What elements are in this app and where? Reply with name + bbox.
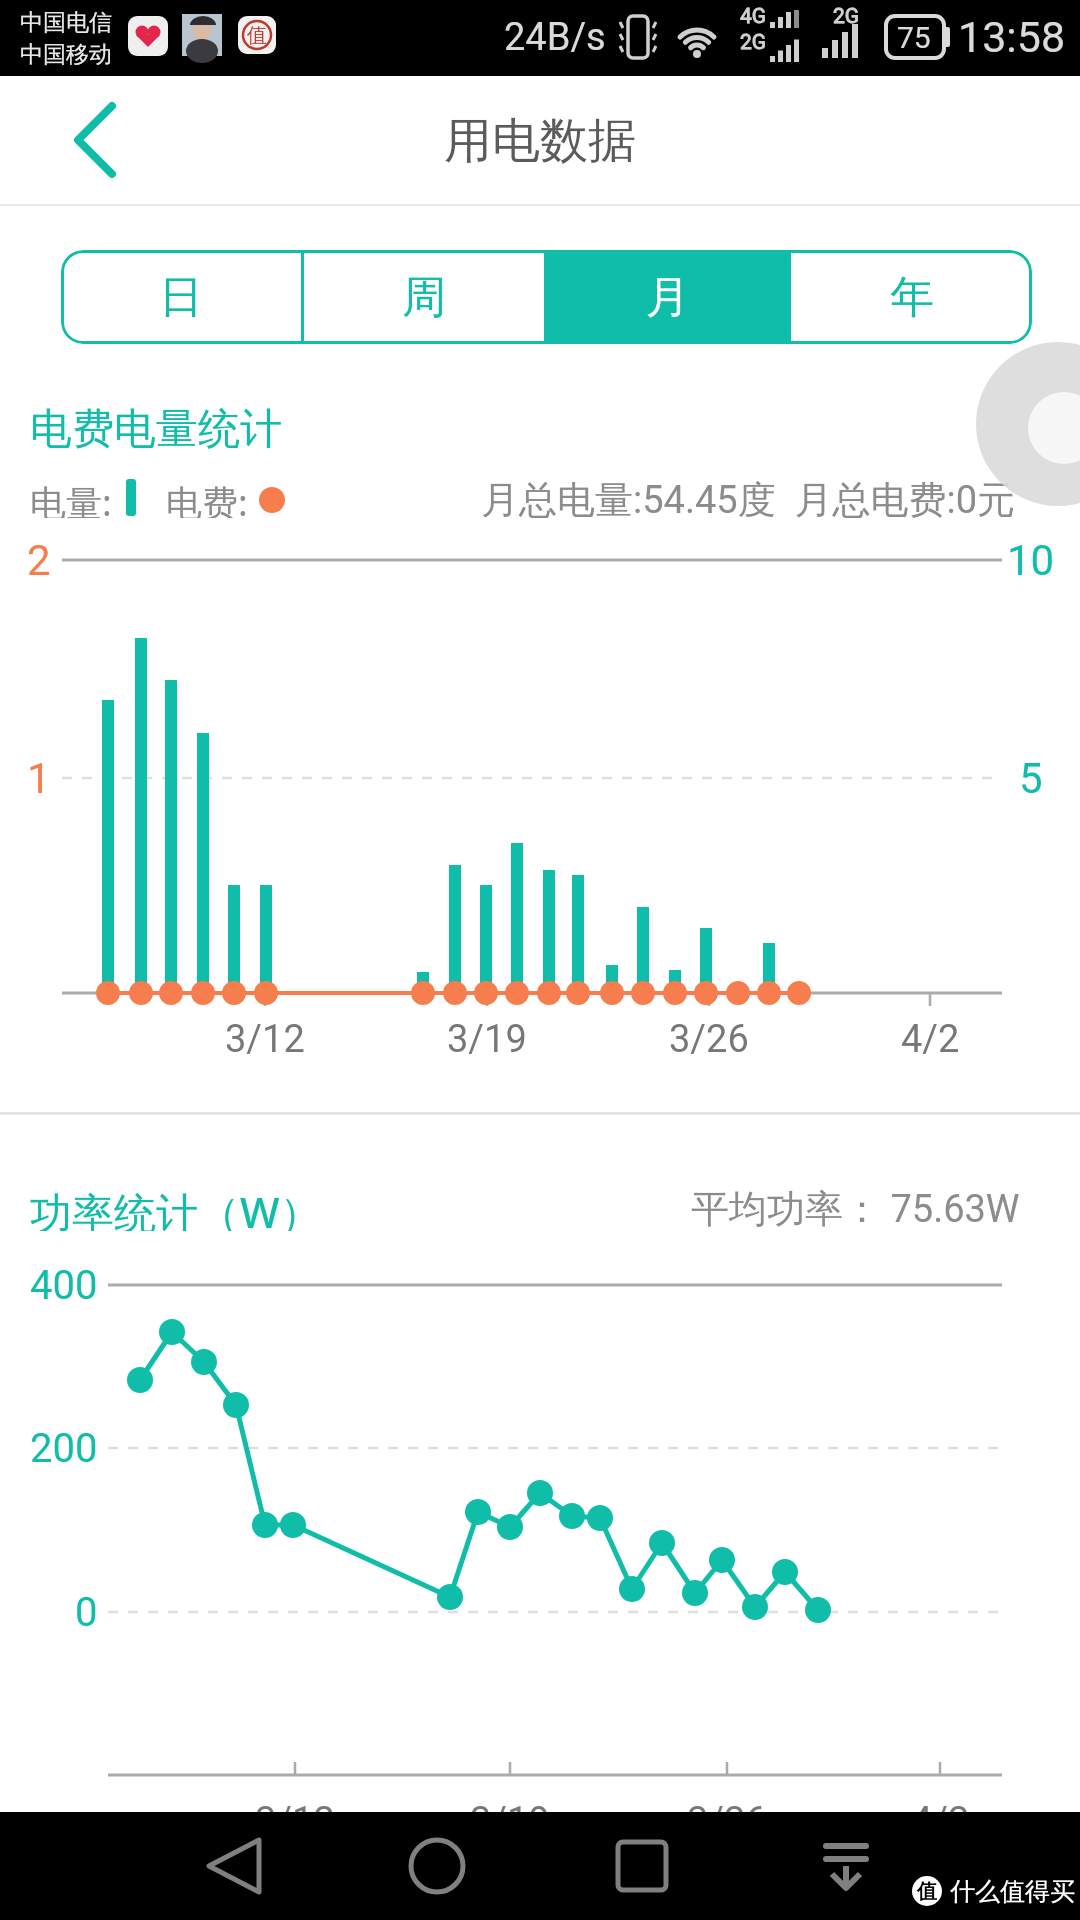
button[interactable]	[182, 1816, 282, 1916]
staticText: 周	[402, 270, 446, 325]
button[interactable]	[387, 1816, 487, 1916]
staticText: 13:58	[958, 12, 1066, 62]
staticText: 400	[30, 1262, 98, 1309]
staticText: 4G	[740, 4, 767, 29]
staticText: 中国移动	[20, 40, 112, 69]
button[interactable]	[797, 1816, 897, 1916]
staticText: 电费电量统计	[30, 403, 282, 451]
button[interactable]: 月	[547, 250, 788, 344]
staticText: 3/19	[470, 1799, 550, 1844]
staticText: 3/26	[669, 1017, 749, 1062]
staticText: 值	[247, 23, 267, 48]
staticText: 平均功率： 75.63W	[691, 1185, 1020, 1229]
staticText: 4/2	[911, 1799, 970, 1844]
staticText: 3/12	[225, 1017, 305, 1062]
staticText: 2G	[740, 30, 767, 55]
staticText: 中国电信	[20, 8, 112, 37]
button[interactable]	[40, 90, 140, 190]
button[interactable]: 年	[791, 250, 1032, 344]
staticText: 用电数据	[444, 111, 636, 171]
staticText: 75	[897, 20, 931, 55]
button[interactable]: 日	[61, 250, 301, 344]
staticText: 3/26	[687, 1799, 767, 1844]
staticText: 2	[27, 536, 51, 584]
staticText: 电量:	[30, 478, 112, 518]
staticText: 值	[917, 1879, 937, 1904]
staticText: 200	[30, 1425, 98, 1472]
staticText: 2G	[833, 4, 860, 29]
staticText: 什么值得买	[950, 1876, 1075, 1906]
staticText: 4/2	[901, 1017, 960, 1062]
staticText: 24B/s	[504, 15, 606, 60]
staticText: 日	[159, 270, 203, 325]
button[interactable]	[592, 1816, 692, 1916]
staticText: 5	[1019, 754, 1043, 802]
staticText: 1	[27, 754, 51, 802]
staticText: 0	[75, 1589, 98, 1636]
staticText: 月总电量:54.45度 月总电费:0元	[481, 476, 1016, 520]
staticText: 3/19	[447, 1017, 527, 1062]
staticText: 10	[1007, 536, 1055, 584]
staticText: 年	[890, 270, 934, 325]
staticText: 功率统计（W）	[30, 1183, 322, 1231]
staticText: 3/12	[255, 1799, 335, 1844]
button[interactable]: 周	[304, 250, 544, 344]
staticText: 月	[646, 270, 690, 325]
staticText: 电费:	[166, 478, 248, 518]
